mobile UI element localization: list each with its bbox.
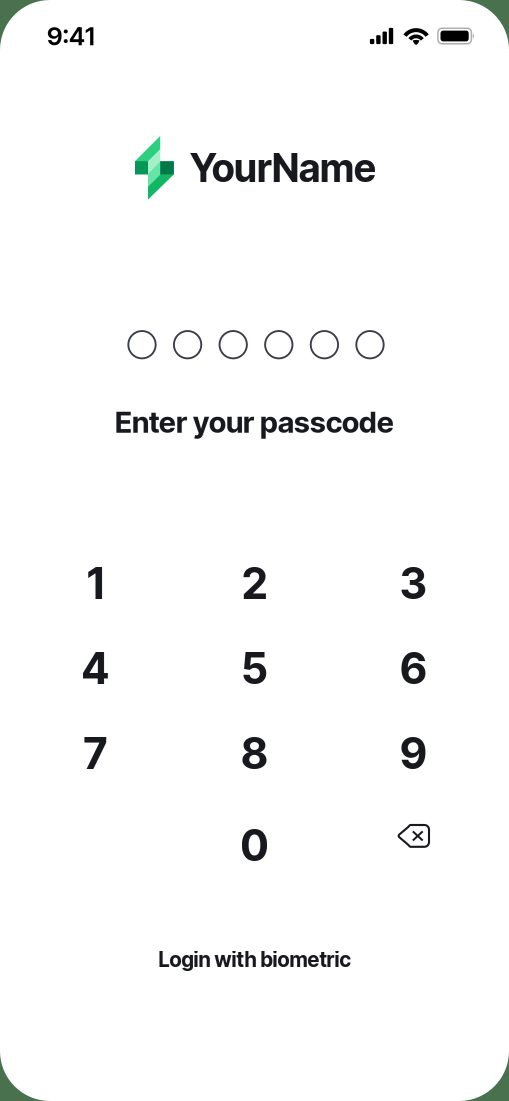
staticText: 2 — [242, 558, 267, 609]
button[interactable]: Delete — [334, 803, 493, 888]
button[interactable]: 8 — [175, 711, 334, 796]
button[interactable]: 3 — [334, 541, 493, 626]
staticText: 0 — [240, 820, 268, 871]
staticText: 5 — [241, 643, 267, 694]
button[interactable]: 1 — [16, 541, 175, 626]
staticText: 8 — [241, 728, 268, 779]
staticText: 6 — [400, 643, 427, 694]
button[interactable]: Login with biometric — [140, 938, 368, 981]
staticText: Login with biometric — [158, 947, 350, 972]
button[interactable]: 2 — [175, 541, 334, 626]
staticText: 9 — [400, 728, 427, 779]
staticText: 9:41 — [47, 21, 95, 51]
staticText: 3 — [400, 558, 427, 609]
button[interactable]: 9 — [334, 711, 493, 796]
button[interactable]: 7 — [16, 711, 175, 796]
button[interactable]: 0 — [175, 803, 334, 888]
staticText: 4 — [81, 643, 109, 694]
staticText: Enter your passcode — [115, 404, 394, 440]
button[interactable]: 6 — [334, 626, 493, 711]
button[interactable]: 4 — [16, 626, 175, 711]
staticText: 1 — [87, 558, 104, 609]
button[interactable]: 5 — [175, 626, 334, 711]
staticText: YourName — [190, 145, 376, 191]
staticText: 7 — [83, 728, 107, 779]
